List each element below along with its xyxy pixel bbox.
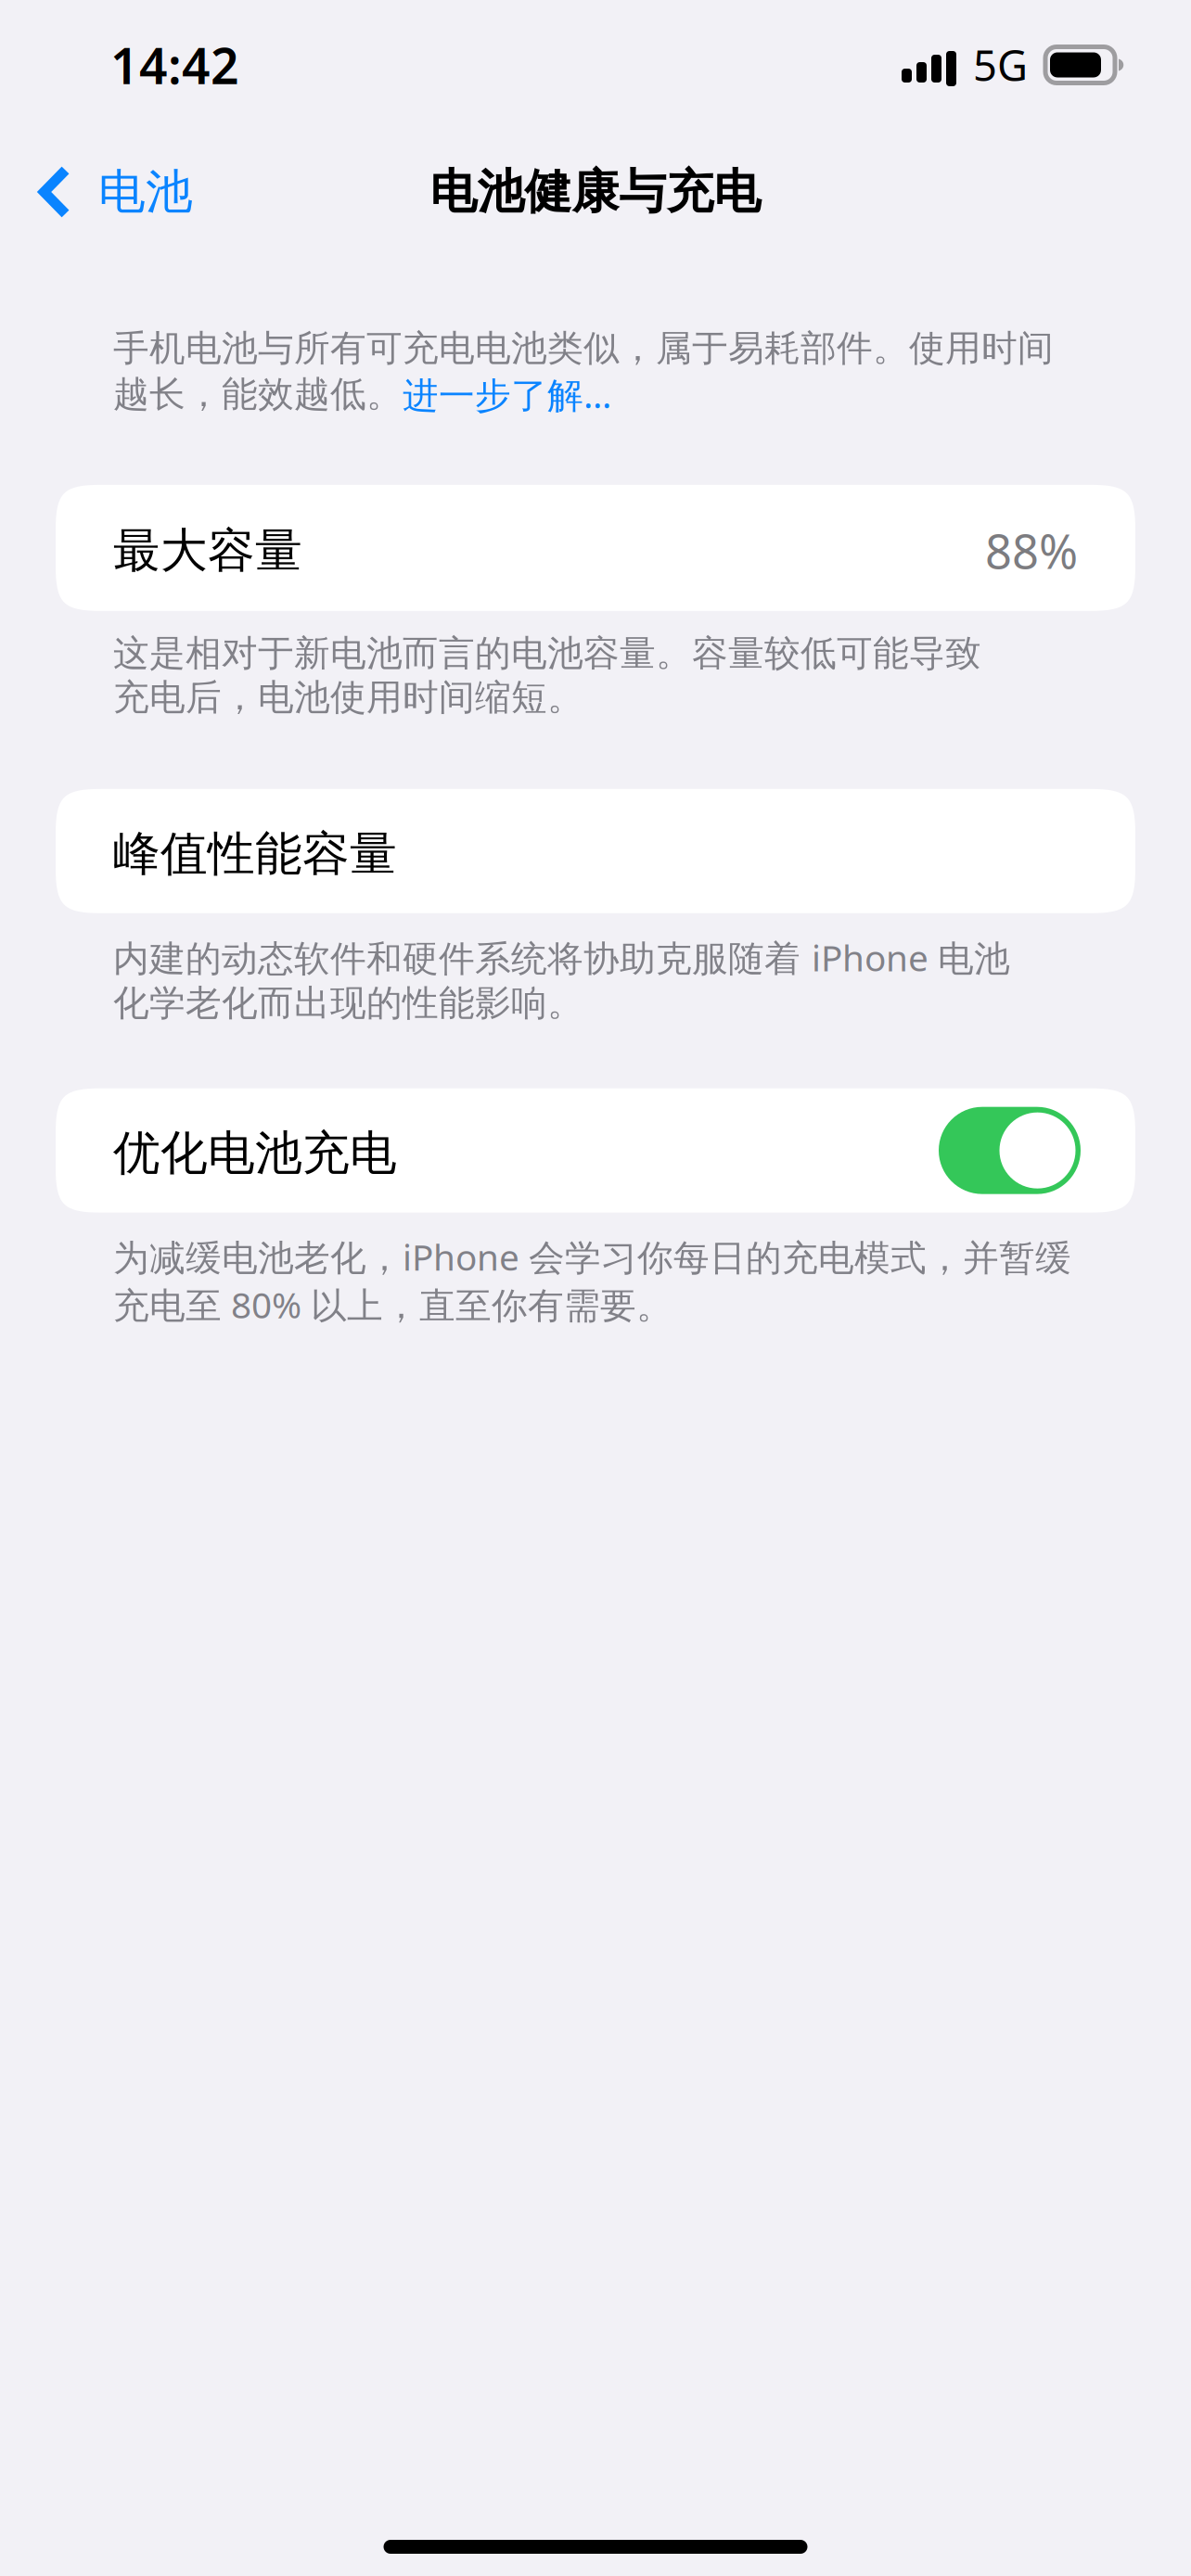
staticText: 为减缓电池老化，iPhone 会学习你每日的充电模式，并暂缓 [113,1233,1071,1281]
staticText: 88% [985,519,1078,582]
staticText: 手机电池与所有可充电电池类似，属于易耗部件。使用时间 [113,326,1054,370]
staticText: 进一步了解... [403,370,611,418]
button[interactable]: 优化电池充电 [56,1088,1135,1213]
staticText: 电池 [98,163,193,221]
staticText: 内建的动态软件和硬件系统将协助克服随着 iPhone 电池 [113,934,1010,981]
button[interactable]: 峰值性能容量 [56,789,1135,913]
button[interactable]: 最大容量 [56,485,1135,611]
staticText: 14:42 [110,32,239,98]
button[interactable]: 进一步了解... [403,370,611,418]
button[interactable]: 返回 电池 [0,135,217,249]
staticText: 峰值性能容量 [113,825,397,883]
staticText: 这是相对于新电池而言的电池容量。容量较低可能导致 [113,631,981,675]
staticText: 充电至 80% 以上，直至你有需要。 [113,1281,672,1328]
staticText: 5G [973,37,1028,93]
staticText: 优化电池充电 [113,1124,397,1182]
staticText: 化学老化而出现的性能影响。 [113,981,583,1025]
staticText: 越长，能效越低。 [113,372,403,416]
button[interactable]: 优化电池充电，已打开 [939,1107,1081,1194]
staticText: 充电后，电池使用时间缩短。 [113,675,583,719]
staticText: 电池健康与充电 [430,163,761,221]
staticText: 最大容量 [113,522,302,579]
